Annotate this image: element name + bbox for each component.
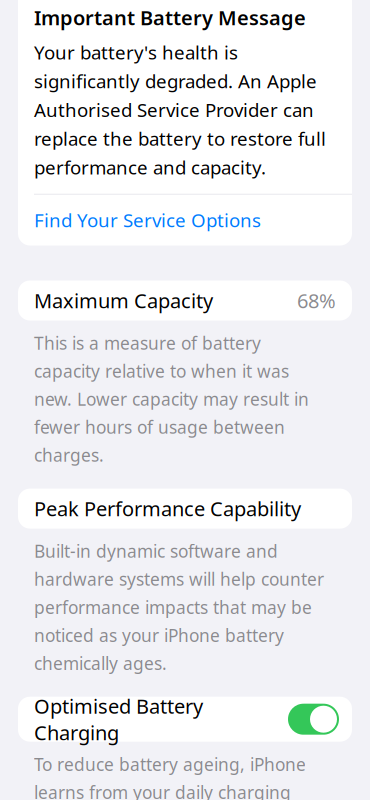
staticText: Your battery's health is significantly d… [34,40,326,180]
staticText: Peak Performance Capability [34,495,301,522]
staticText: This is a measure of battery capacity re… [34,331,309,467]
staticText: Important Battery Message [34,4,306,31]
button[interactable]: Maximum Capacity [18,280,352,320]
staticText: Optimised Battery Charging [34,693,203,746]
staticText: Built-in dynamic software and hardware s… [34,540,324,675]
staticText: To reduce battery ageing, iPhone learns … [34,753,309,800]
button[interactable]: Peak Performance Capability [18,489,352,529]
button[interactable]: Optimised Battery Charging [18,697,352,742]
staticText: 68% [297,287,336,314]
button[interactable]: Find Your Service Options [18,195,352,245]
staticText: Maximum Capacity [34,287,213,314]
staticText: Find Your Service Options [34,208,261,232]
